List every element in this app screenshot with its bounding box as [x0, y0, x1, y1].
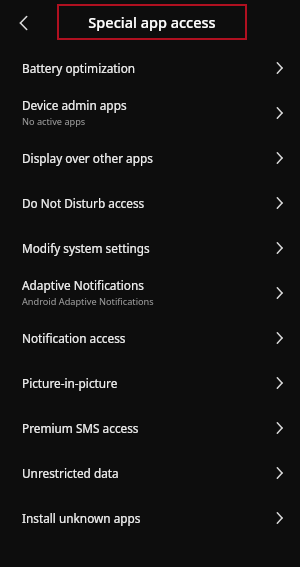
staticText: Android Adaptive Notifications — [22, 295, 154, 308]
staticText: Special app access — [88, 12, 216, 32]
staticText: Battery optimization — [22, 60, 136, 76]
staticText: No active apps — [22, 115, 86, 128]
button[interactable]: Display over other apps — [0, 135, 300, 180]
button[interactable]: Modify system settings — [0, 225, 300, 270]
staticText: Adaptive Notifications — [22, 277, 144, 293]
staticText: Device admin apps — [22, 97, 127, 113]
button[interactable]: Device admin apps — [0, 90, 300, 135]
button[interactable]: Adaptive Notifications — [0, 270, 300, 315]
button[interactable]: Do Not Disturb access — [0, 180, 300, 225]
button[interactable]: Back — [10, 9, 38, 37]
staticText: Do Not Disturb access — [22, 195, 145, 211]
button[interactable]: Install unknown apps — [0, 495, 300, 540]
button[interactable]: Unrestricted data — [0, 450, 300, 495]
staticText: Display over other apps — [22, 150, 153, 166]
staticText: Install unknown apps — [22, 510, 141, 526]
staticText: Modify system settings — [22, 240, 150, 256]
staticText: Premium SMS access — [22, 420, 139, 436]
staticText: Picture-in-picture — [22, 375, 118, 391]
button[interactable]: Picture-in-picture — [0, 360, 300, 405]
staticText: Unrestricted data — [22, 465, 119, 481]
staticText: Notification access — [22, 330, 126, 346]
button[interactable]: Notification access — [0, 315, 300, 360]
button[interactable]: Premium SMS access — [0, 405, 300, 450]
button[interactable]: Battery optimization — [0, 45, 300, 90]
